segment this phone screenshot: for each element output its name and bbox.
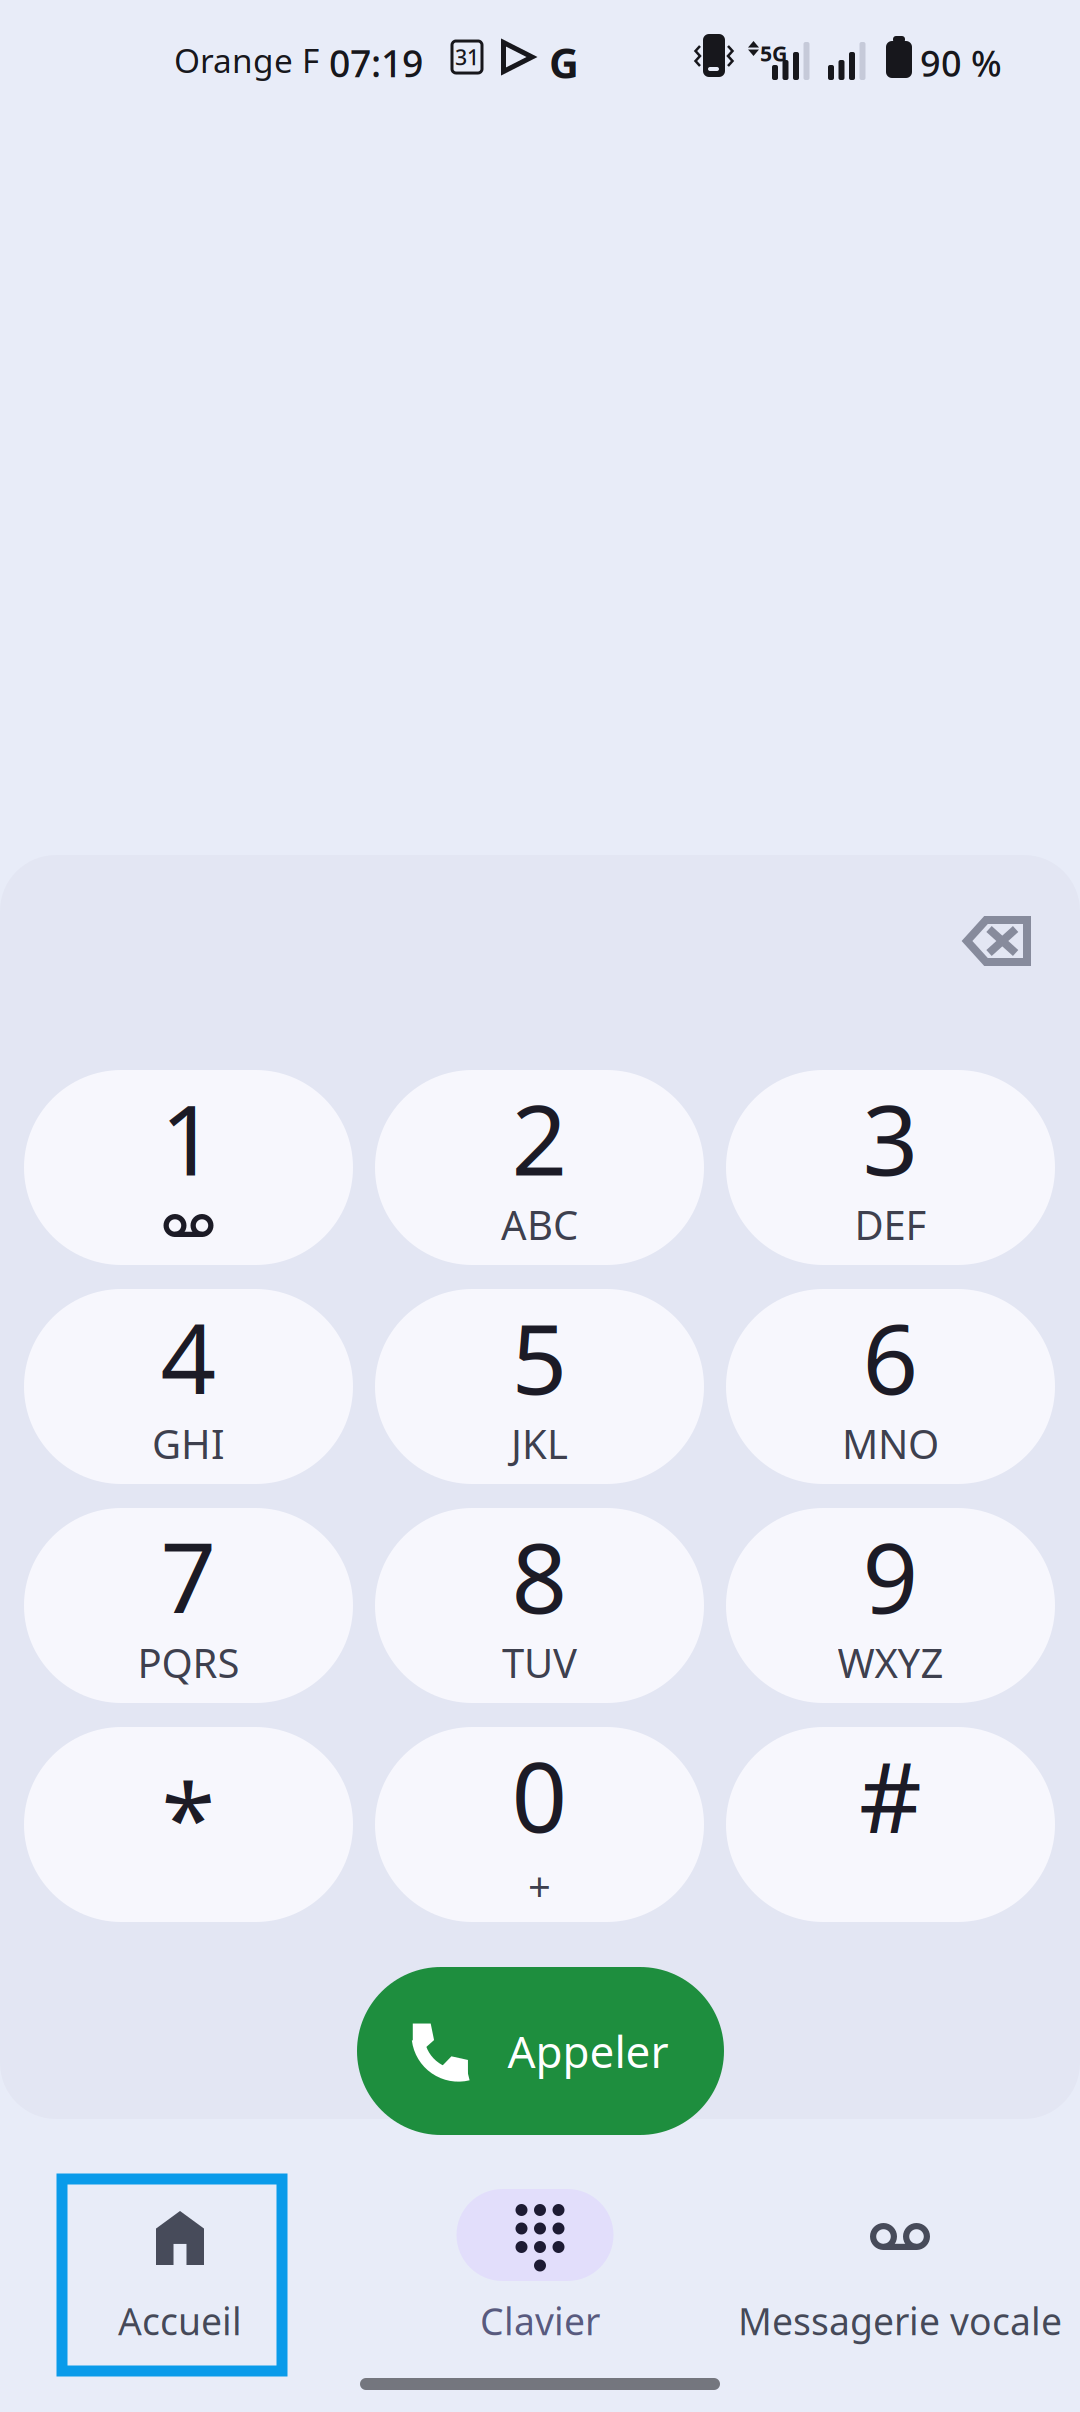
button[interactable]: 4: [24, 1289, 353, 1484]
staticText: 6: [862, 1292, 918, 1421]
staticText: 2: [511, 1073, 567, 1202]
staticText: WXYZ: [837, 1636, 943, 1689]
button[interactable]: 9: [726, 1508, 1055, 1703]
button[interactable]: Accueil: [60, 2175, 300, 2375]
staticText: 7: [160, 1511, 216, 1640]
staticText: DEF: [854, 1198, 926, 1251]
staticText: 07:19: [329, 38, 423, 88]
staticText: PQRS: [137, 1636, 239, 1689]
button[interactable]: Messagerie vocale: [730, 2175, 1070, 2375]
staticText: 4: [160, 1292, 216, 1421]
staticText: 0: [511, 1730, 567, 1859]
button[interactable]: *: [24, 1727, 353, 1922]
staticText: Accueil: [118, 2296, 242, 2346]
staticText: JKL: [511, 1417, 568, 1470]
staticText: 90 %: [920, 39, 1002, 87]
button[interactable]: Clavier: [420, 2175, 660, 2375]
staticText: 31: [455, 43, 479, 71]
button[interactable]: 8: [375, 1508, 704, 1703]
button[interactable]: #: [726, 1727, 1055, 1922]
button[interactable]: 0: [375, 1727, 704, 1922]
button[interactable]: 5: [375, 1289, 704, 1484]
staticText: 8: [511, 1511, 567, 1640]
staticText: +: [528, 1859, 551, 1912]
staticText: Messagerie vocale: [738, 2296, 1062, 2346]
button[interactable]: 1: [24, 1070, 353, 1265]
staticText: 1: [160, 1073, 216, 1202]
button[interactable]: Effacer: [936, 881, 1056, 1001]
staticText: G: [549, 35, 579, 90]
staticText: 5: [511, 1292, 567, 1421]
button[interactable]: 6: [726, 1289, 1055, 1484]
staticText: #: [859, 1730, 922, 1859]
staticText: Orange F: [174, 38, 319, 82]
button[interactable]: 3: [726, 1070, 1055, 1265]
button[interactable]: Appeler: [357, 1967, 724, 2135]
staticText: *: [161, 1752, 215, 1881]
staticText: 5G: [760, 39, 787, 67]
staticText: GHI: [152, 1417, 225, 1470]
button[interactable]: 7: [24, 1508, 353, 1703]
staticText: ABC: [501, 1198, 578, 1251]
button[interactable]: 2: [375, 1070, 704, 1265]
staticText: 3: [862, 1073, 918, 1202]
staticText: TUV: [502, 1636, 577, 1689]
staticText: 9: [862, 1511, 918, 1640]
staticText: MNO: [842, 1417, 939, 1470]
staticText: Clavier: [480, 2296, 600, 2346]
staticText: Appeler: [507, 2022, 668, 2080]
